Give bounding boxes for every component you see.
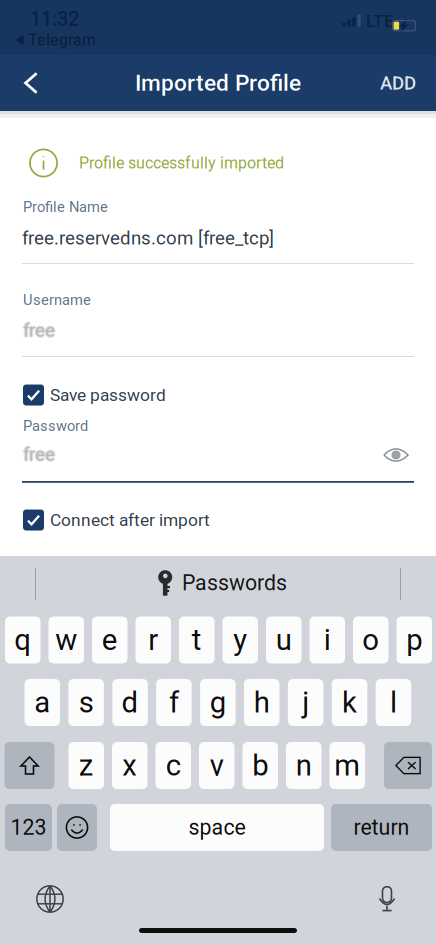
staticText: Password [23, 417, 88, 435]
staticText: u [276, 623, 292, 657]
staticText: Save password [50, 385, 166, 405]
staticText: free [23, 321, 55, 343]
staticText: free [23, 442, 55, 464]
button[interactable]: Connect after import [23, 509, 283, 531]
button[interactable]: ADD [360, 55, 436, 111]
staticText: ADD [380, 72, 416, 94]
staticText: k [342, 685, 357, 720]
staticText: return [353, 815, 409, 840]
staticText: Profile Name [23, 198, 108, 216]
button[interactable]: j [288, 679, 323, 726]
staticText: j [302, 685, 309, 720]
staticText: free [22, 443, 54, 465]
button[interactable]: q [5, 616, 40, 663]
staticText: Telegram [28, 31, 96, 49]
button[interactable]: Emoji [57, 804, 97, 851]
button[interactable]: i [309, 616, 345, 663]
button[interactable]: Delete [384, 742, 432, 789]
staticText: space [188, 815, 245, 840]
staticText: f [169, 685, 179, 720]
button[interactable]: p [396, 616, 432, 663]
staticText: free [23, 445, 55, 467]
staticText: l [390, 685, 397, 720]
button[interactable]: s [68, 679, 104, 726]
staticText: t [192, 623, 202, 657]
button[interactable]: w [48, 616, 84, 663]
staticText: free [23, 318, 55, 340]
button[interactable]: x [112, 742, 147, 789]
button[interactable]: e [92, 616, 127, 663]
staticText: q [14, 623, 31, 657]
staticText: h [254, 685, 270, 720]
staticText: Imported Profile [135, 70, 301, 96]
staticText: free [23, 319, 55, 341]
staticText: r [148, 623, 158, 657]
staticText: i [324, 623, 331, 657]
button[interactable]: t [179, 616, 214, 663]
staticText: b [252, 748, 268, 783]
staticText: free [22, 319, 54, 341]
staticText: free.reservedns.com [free_tcp] [22, 227, 274, 249]
button[interactable]: a [24, 679, 60, 726]
staticText: v [210, 748, 224, 783]
button[interactable]: d [112, 679, 148, 726]
staticText: Passwords [182, 570, 287, 595]
staticText: e [102, 623, 118, 657]
button[interactable]: space [110, 804, 324, 851]
staticText: free [24, 319, 56, 341]
button[interactable]: Back [0, 55, 62, 111]
staticText: Profile successfully imported [79, 154, 284, 172]
staticText: p [406, 623, 422, 657]
staticText: 11:32 [30, 7, 79, 31]
staticText: 123 [10, 815, 46, 840]
staticText: c [166, 748, 181, 783]
staticText: n [296, 748, 312, 783]
button[interactable]: v [199, 742, 234, 789]
button[interactable]: Save password [23, 384, 283, 406]
button[interactable]: Shift [4, 742, 54, 789]
button[interactable]: Next keyboard [36, 885, 64, 913]
staticText: Connect after import [50, 510, 210, 530]
button[interactable]: o [353, 616, 388, 663]
staticText: o [362, 623, 379, 657]
button[interactable]: u [266, 616, 301, 663]
staticText: free [23, 443, 55, 465]
button[interactable]: h [244, 679, 279, 726]
button[interactable]: Dictation [378, 886, 395, 912]
staticText: LTE [366, 11, 394, 31]
staticText: s [79, 685, 94, 720]
button[interactable]: Show password [383, 446, 409, 464]
staticText: g [210, 685, 226, 720]
button[interactable]: l [376, 679, 411, 726]
staticText: d [121, 685, 138, 720]
button[interactable]: z [68, 742, 104, 789]
staticText: y [233, 623, 247, 657]
staticText: m [334, 748, 360, 783]
button[interactable]: r [135, 616, 171, 663]
staticText: Username [23, 291, 91, 309]
button[interactable]: c [155, 742, 191, 789]
button[interactable]: k [332, 679, 367, 726]
staticText: z [79, 748, 94, 783]
button[interactable]: 123 [5, 804, 52, 851]
staticText: x [122, 748, 137, 783]
button[interactable]: f [156, 679, 192, 726]
button[interactable]: return [331, 804, 432, 851]
staticText: a [34, 685, 50, 720]
button[interactable]: n [286, 742, 321, 789]
staticText: w [55, 623, 77, 657]
button[interactable]: b [242, 742, 278, 789]
button[interactable]: g [200, 679, 236, 726]
staticText: free [24, 443, 56, 465]
button[interactable]: m [329, 742, 365, 789]
button[interactable]: y [222, 616, 258, 663]
